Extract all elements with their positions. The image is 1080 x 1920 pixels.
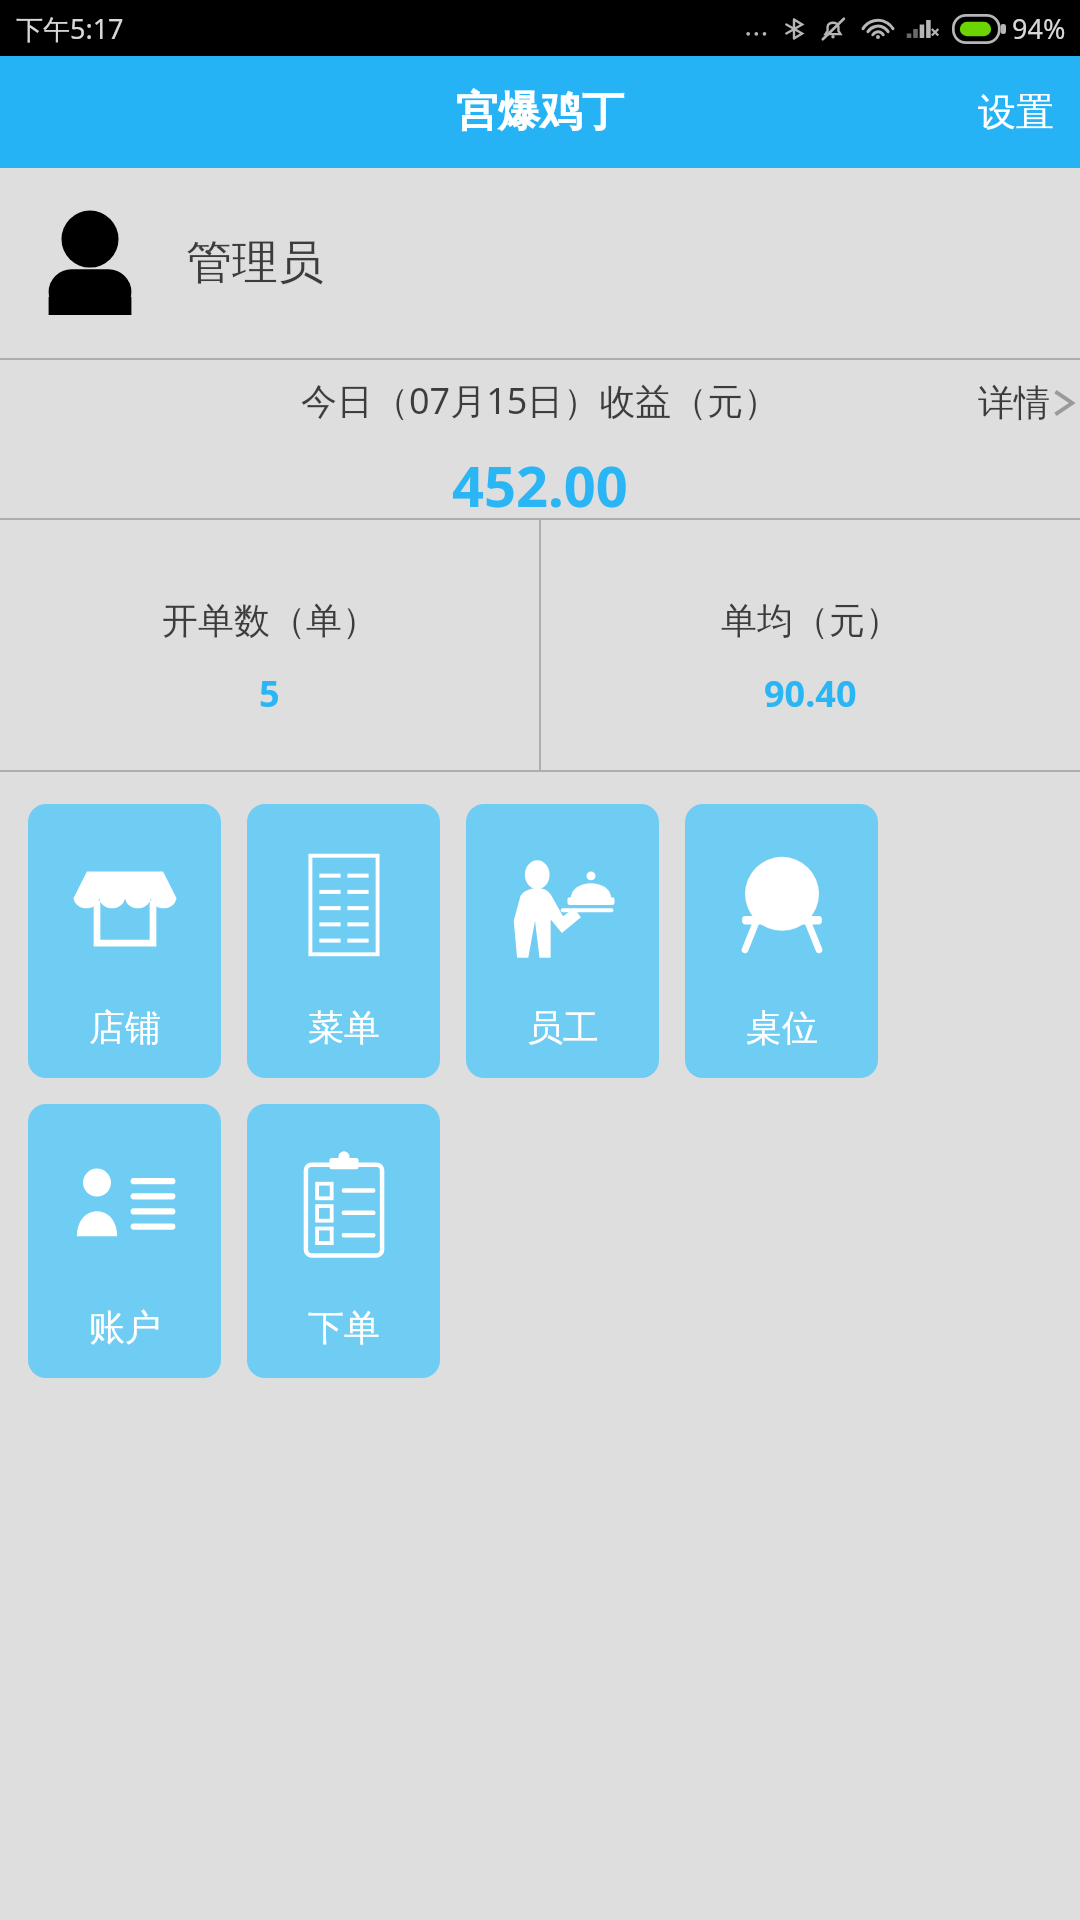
button[interactable]: 桌位 <box>685 804 878 1078</box>
staticText: 店铺 <box>89 1005 161 1050</box>
staticText: 94% <box>1012 10 1066 47</box>
staticText: 详情 <box>978 380 1050 425</box>
button[interactable]: 菜单 <box>247 804 440 1078</box>
staticText: 开单数（单） <box>162 598 378 643</box>
button[interactable]: 今日（07月15日）收益（元） <box>0 360 1080 518</box>
staticText: 宫爆鸡丁 <box>456 86 624 139</box>
staticText: 账户 <box>89 1305 161 1350</box>
button[interactable]: 管理员 <box>0 168 1080 358</box>
staticText: 今日（07月15日）收益（元） <box>301 376 780 425</box>
staticText: 设置 <box>978 88 1054 136</box>
button[interactable]: 店铺 <box>28 804 221 1078</box>
staticText: 单均（元） <box>721 598 901 643</box>
staticText: 下单 <box>308 1305 380 1350</box>
staticText: 452.00 <box>452 447 628 518</box>
staticText: 下午5:17 <box>16 10 124 47</box>
staticText: 员工 <box>527 1005 599 1050</box>
staticText: 管理员 <box>186 234 324 292</box>
button[interactable]: 下单 <box>247 1104 440 1378</box>
staticText: 90.40 <box>764 669 857 718</box>
button[interactable]: 账户 <box>28 1104 221 1378</box>
button[interactable]: 员工 <box>466 804 659 1078</box>
staticText: 菜单 <box>308 1005 380 1050</box>
button[interactable]: 单均（元） <box>541 520 1080 770</box>
staticText: 桌位 <box>746 1005 818 1050</box>
button[interactable]: 设置 <box>952 56 1080 168</box>
staticText: 5 <box>259 669 280 718</box>
button[interactable]: 开单数（单） <box>0 520 539 770</box>
